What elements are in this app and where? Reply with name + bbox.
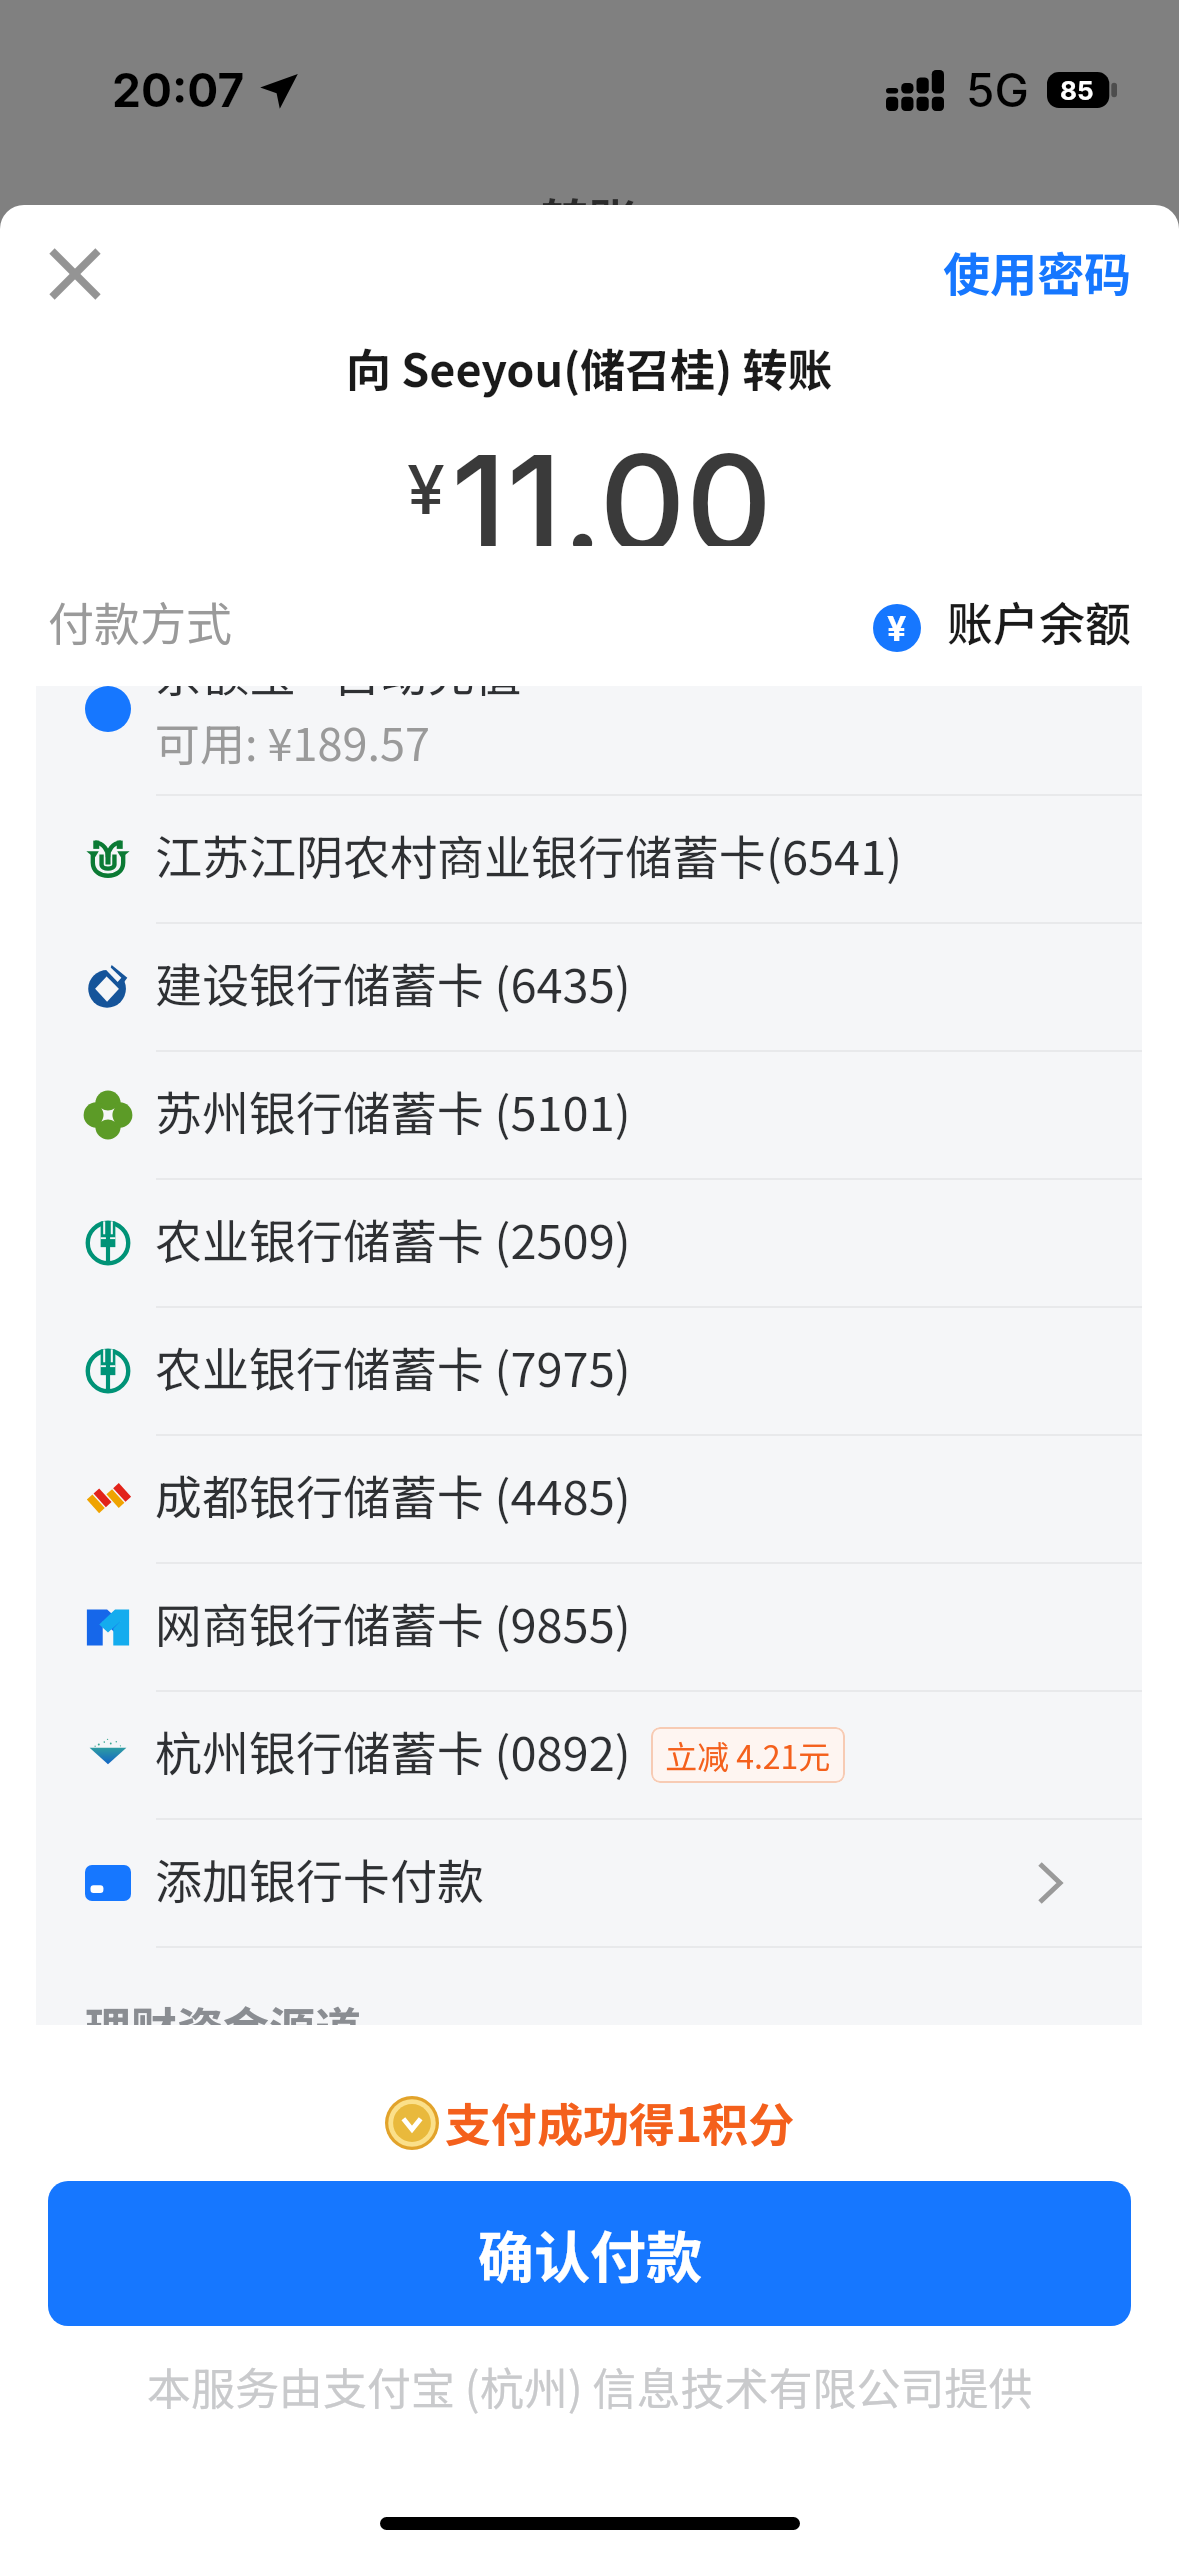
button[interactable]: 江苏江阴农村商业银行储蓄卡(6541) [36, 796, 1142, 922]
staticText: 农业银行储蓄卡 (2509) [155, 1204, 631, 1272]
staticText: 本服务由支付宝 (杭州) 信息技术有限公司提供 [147, 2354, 1033, 2418]
button[interactable]: 余额宝 - 自动充值 [36, 686, 1142, 794]
staticText: 付款方式 [48, 588, 232, 655]
button[interactable]: 确认付款 [48, 2181, 1131, 2326]
staticText: 江苏江阴农村商业银行储蓄卡(6541) [155, 820, 903, 888]
staticText: 理财资金源道 [85, 1993, 361, 2025]
staticText: ¥ [887, 608, 907, 649]
staticText: 立减 4.21元 [665, 1732, 831, 1778]
staticText: 使用密码 [943, 237, 1131, 305]
staticText: 苏州银行储蓄卡 (5101) [155, 1076, 631, 1144]
button[interactable]: 杭州银行储蓄卡 (0892) [36, 1692, 1142, 1818]
staticText: 85 [1060, 75, 1094, 106]
staticText: 向 Seeyou(储召桂) 转账 [346, 335, 833, 400]
staticText: 网商银行储蓄卡 (9855) [155, 1588, 631, 1656]
staticText: 可用: ¥189.57 [155, 709, 430, 774]
staticText: 添加银行卡付款 [155, 1844, 484, 1912]
staticText: 成都银行储蓄卡 (4485) [155, 1460, 631, 1528]
staticText: 11.00 [451, 422, 773, 546]
staticText: 支付成功得1积分 [445, 2089, 795, 2156]
button[interactable]: 苏州银行储蓄卡 (5101) [36, 1052, 1142, 1178]
button[interactable]: 添加银行卡付款 [36, 1820, 1142, 1946]
staticText: 确认付款 [478, 2213, 702, 2294]
staticText: 农业银行储蓄卡 (7975) [155, 1332, 631, 1400]
staticText: 余额宝 - 自动充值 [155, 686, 522, 705]
button[interactable]: 成都银行储蓄卡 (4485) [36, 1436, 1142, 1562]
staticText: 20:07 [112, 62, 245, 118]
button[interactable]: 使用密码 [923, 225, 1179, 317]
staticText: 转账 [541, 183, 638, 205]
staticText: 建设银行储蓄卡 (6435) [155, 948, 631, 1016]
button[interactable]: 农业银行储蓄卡 (7975) [36, 1308, 1142, 1434]
button[interactable]: 农业银行储蓄卡 (2509) [36, 1180, 1142, 1306]
staticText: 账户余额 [947, 588, 1131, 655]
button[interactable]: Close [34, 233, 116, 315]
button[interactable]: 建设银行储蓄卡 (6435) [36, 924, 1142, 1050]
staticText: ¥ [407, 448, 445, 530]
staticText: 5G [966, 62, 1029, 118]
button[interactable]: 网商银行储蓄卡 (9855) [36, 1564, 1142, 1690]
staticText: 杭州银行储蓄卡 (0892) [155, 1716, 631, 1784]
